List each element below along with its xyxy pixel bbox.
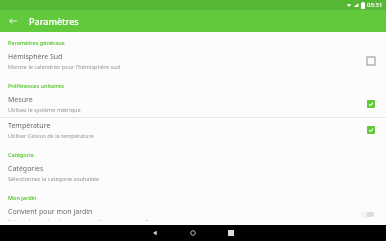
staticText: Sélectionnez la catégorie souhaitée [8,175,100,182]
staticText: Hémisphère Sud [8,52,63,62]
staticText: Mon jardin [8,194,37,201]
staticText: 05:51 [367,1,383,9]
staticText: Voir seulement les plantes appropriées p… [8,218,153,221]
staticText: Paramètres [29,15,79,27]
button[interactable]: Convient pour mon jardin [0,204,386,225]
staticText: Catégories [8,164,44,174]
staticText: Paramètres généraux [8,39,65,46]
staticText: Utilisez le système métrique [8,106,81,113]
staticText: Catégorie [8,151,34,158]
staticText: Mesure [8,95,33,105]
staticText: Montre le calendrier pour l'hémisphère s… [8,63,121,70]
button[interactable]: Unchecked [364,54,378,68]
button[interactable]: Catégories [0,161,386,186]
button[interactable]: Température [0,118,386,143]
staticText: Température [8,121,51,131]
staticText: Convient pour mon jardin [8,207,93,217]
button[interactable]: Home [180,225,206,241]
button[interactable]: Mesure [0,92,386,117]
button[interactable]: Recents [218,225,244,241]
button[interactable]: Checked [364,123,378,137]
button[interactable]: Back [142,225,168,241]
button[interactable]: Checked [364,97,378,111]
staticText: Préférences unitaires [8,82,64,89]
button[interactable]: Hémisphère Sud [0,49,386,74]
button[interactable]: Toggle [358,208,378,220]
button[interactable]: Back [4,12,22,30]
staticText: Utiliser Celsius de la température [8,132,94,139]
